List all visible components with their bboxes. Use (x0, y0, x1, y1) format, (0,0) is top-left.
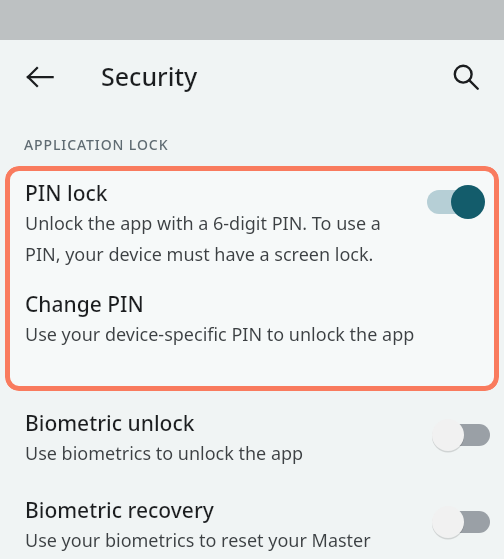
staticText: PIN lock (25, 179, 108, 208)
button[interactable]: Search (440, 51, 492, 103)
staticText: Change PIN (25, 290, 144, 319)
staticText: Biometric recovery (25, 496, 214, 525)
staticText: Unlock the app with a 6-digit PIN. To us… (25, 211, 421, 266)
button[interactable]: Biometric recovery (0, 496, 504, 553)
button[interactable] (432, 419, 490, 451)
button[interactable]: Change PIN (5, 290, 499, 347)
staticText: Biometric unlock (25, 409, 195, 438)
button[interactable] (432, 506, 490, 538)
staticText: Security (101, 59, 198, 93)
staticText: Use biometrics to unlock the app (25, 441, 304, 466)
staticText: Use your biometrics to reset your Master (25, 528, 371, 553)
button[interactable] (427, 185, 485, 219)
button[interactable]: Back (14, 51, 66, 103)
button[interactable]: PIN lock (5, 166, 499, 266)
staticText: Use your device-specific PIN to unlock t… (25, 322, 415, 347)
staticText: APPLICATION LOCK (24, 135, 169, 154)
button[interactable]: Biometric unlock (0, 409, 504, 466)
